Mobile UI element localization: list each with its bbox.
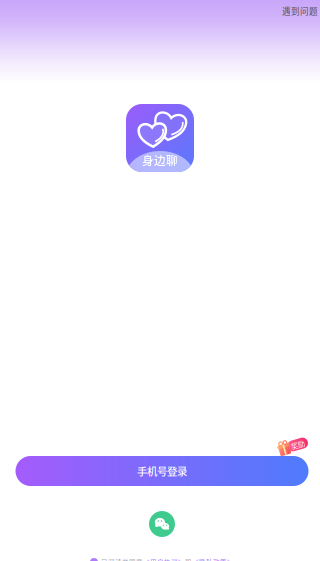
button[interactable]: 《隐私政策》 bbox=[192, 557, 234, 561]
staticText: 手机号登录 bbox=[137, 463, 187, 479]
staticText: 和 bbox=[185, 557, 192, 561]
button[interactable]: 遇到问题 bbox=[278, 1, 320, 21]
button[interactable]: 同意协议 bbox=[90, 558, 101, 561]
button[interactable]: 微信登录 bbox=[145, 507, 179, 541]
staticText: 遇到问题 bbox=[282, 5, 318, 17]
button[interactable]: 手机号登录 bbox=[15, 456, 308, 486]
staticText: 《隐私政策》 bbox=[192, 557, 234, 561]
staticText: 奖励 bbox=[291, 442, 305, 452]
staticText: 已阅读并同意 bbox=[101, 557, 143, 561]
button[interactable]: 《用户协议》 bbox=[143, 557, 185, 561]
staticText: 《用户协议》 bbox=[143, 557, 185, 561]
staticText: 身边聊 bbox=[142, 152, 178, 168]
